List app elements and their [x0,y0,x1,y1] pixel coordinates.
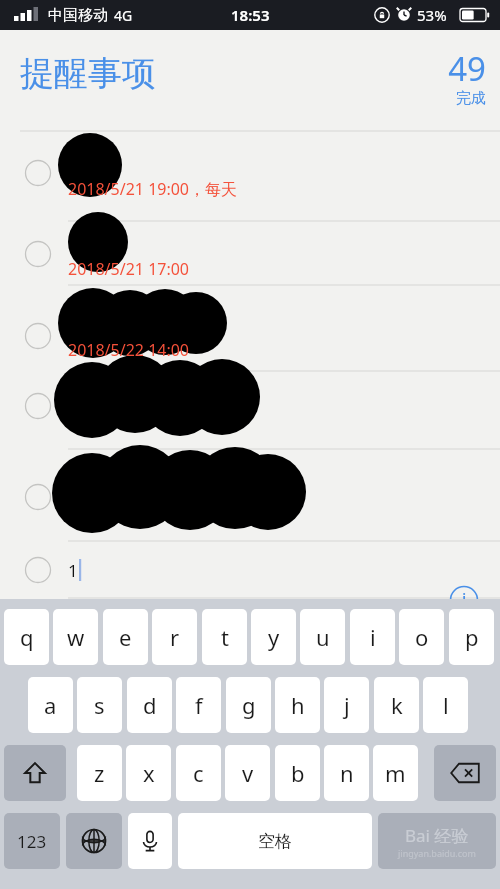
staticText: h [291,690,305,720]
staticText: k [391,690,403,720]
button[interactable]: h [275,677,320,733]
staticText: j [344,690,350,720]
button[interactable]: y [251,609,296,665]
button[interactable]: g [226,677,271,733]
button[interactable]: p [449,609,494,665]
staticText: m [385,758,406,788]
button[interactable]: z [77,745,122,801]
button[interactable]: Delete [434,745,496,801]
button[interactable]: b [275,745,320,801]
staticText: 2018/5/21 17:00 [68,258,190,280]
staticText: x [143,758,155,788]
staticText: r [170,622,180,652]
staticText: 18:53 [231,5,270,25]
button[interactable]: w [53,609,98,665]
button[interactable]: 空格 [178,813,372,869]
staticText: l [443,690,449,720]
staticText: o [415,622,429,652]
button[interactable]: Numbers [4,813,60,869]
button[interactable]: l [423,677,468,733]
staticText: i [462,588,467,610]
staticText: 4G [114,6,133,25]
staticText: w [67,622,85,652]
button[interactable]: c [176,745,221,801]
button[interactable]: q [4,609,49,665]
staticText: n [340,758,354,788]
button[interactable]: Reminder details [448,584,480,616]
staticText: u [316,622,330,652]
staticText: d [143,690,157,720]
button[interactable]: j [324,677,369,733]
staticText: p [465,622,479,652]
staticText: f [195,690,203,720]
staticText: 2018/5/21 19:00，每天 [68,178,238,200]
button[interactable]: Shift [4,745,66,801]
staticText: 1 [68,559,78,582]
staticText: a [44,690,57,720]
staticText: Bai 经验 [405,824,469,847]
staticText: i [370,622,376,652]
button[interactable]: m [373,745,418,801]
staticText: s [94,690,105,720]
staticText: e [119,622,132,652]
staticText: z [94,758,105,788]
staticText: 53% [417,5,447,25]
button[interactable]: e [103,609,148,665]
button[interactable]: x [126,745,171,801]
staticText: v [242,758,254,788]
staticText: q [20,622,34,652]
staticText: 123 [17,830,47,853]
button[interactable]: 1 [0,542,500,598]
button[interactable]: v [225,745,270,801]
staticText: jingyan.baidu.com [398,847,476,859]
button[interactable]: Next keyboard [66,813,122,869]
staticText: 2018/5/22 14:00 [68,339,190,361]
staticText: 完成 [456,89,486,108]
staticText: t [221,622,229,652]
button[interactable]: u [300,609,345,665]
staticText: g [242,690,256,720]
button[interactable]: f [176,677,221,733]
staticText: 中国移动 [48,6,108,25]
button[interactable]: d [127,677,172,733]
staticText: y [268,622,280,652]
button[interactable]: o [399,609,444,665]
button[interactable]: Dictation [128,813,172,869]
button[interactable]: i [350,609,395,665]
button[interactable]: a [28,677,73,733]
button[interactable]: s [77,677,122,733]
button[interactable]: t [202,609,247,665]
button[interactable]: k [374,677,419,733]
staticText: c [193,758,204,788]
button[interactable]: n [324,745,369,801]
staticText: 空格 [258,831,292,852]
button[interactable]: Return [378,813,496,869]
staticText: 49 [448,46,486,91]
button[interactable]: r [152,609,197,665]
staticText: 提醒事项 [20,52,156,95]
staticText: b [291,758,305,788]
